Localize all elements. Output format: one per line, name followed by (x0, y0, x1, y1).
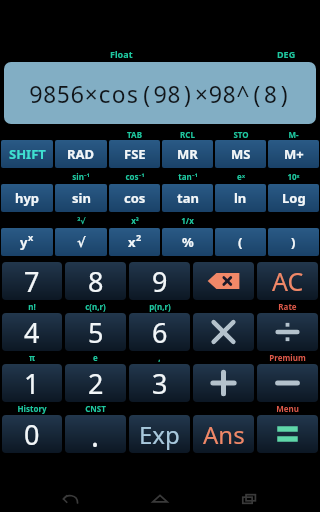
staticText: cos⁻¹ (125, 171, 145, 182)
staticText: MR (177, 145, 198, 163)
staticText: 9 (152, 263, 168, 300)
staticText: 1/x (181, 215, 194, 226)
staticText: 9856×cos(98)×98^(8) (29, 78, 292, 109)
staticText: RCL (180, 129, 195, 140)
staticText: 0 (24, 416, 40, 453)
staticText: 4 (24, 314, 40, 351)
staticText: ³√ (77, 215, 86, 226)
staticText: sin (72, 189, 91, 207)
staticText: 2 (88, 365, 104, 402)
staticText: c(n,r) (85, 301, 106, 312)
button[interactable]: cos (109, 184, 160, 212)
button[interactable]: hyp (1, 184, 53, 212)
button[interactable]: 1 (2, 364, 62, 402)
button[interactable]: ln (215, 184, 266, 212)
staticText: M- (288, 129, 299, 140)
button[interactable]: 6 (129, 313, 190, 351)
staticText: n! (28, 301, 36, 312)
button[interactable]: Multiply (193, 313, 254, 351)
button[interactable]: 0 (2, 415, 62, 453)
button[interactable]: Divide (257, 313, 318, 351)
staticText: e (93, 352, 98, 363)
staticText: tan⁻¹ (178, 171, 198, 182)
button[interactable]: Ans (193, 415, 254, 453)
button[interactable]: 2 (65, 364, 126, 402)
staticText: 6 (152, 314, 168, 351)
button[interactable]: 3 (129, 364, 190, 402)
button[interactable]: Log (268, 184, 319, 212)
staticText: x (128, 233, 136, 251)
button[interactable]: ( (215, 228, 266, 256)
button[interactable]: y (1, 228, 53, 256)
button[interactable]: Equals (257, 415, 318, 453)
button[interactable]: Back (50, 486, 90, 512)
staticText: 10ˣ (287, 171, 300, 182)
button[interactable]: FSE (109, 140, 160, 168)
staticText: SHIFT (9, 145, 46, 163)
staticText: AC (272, 264, 304, 298)
staticText: History (17, 403, 47, 414)
staticText: % (182, 233, 194, 251)
staticText: π (29, 352, 35, 363)
staticText: Float (110, 48, 133, 60)
button[interactable]: √ (55, 228, 107, 256)
staticText: DEG (277, 48, 296, 60)
staticText: Premium (269, 352, 306, 363)
button[interactable]: Home (140, 486, 180, 512)
button[interactable]: x (109, 228, 160, 256)
staticText: ( (238, 233, 243, 251)
button[interactable]: % (162, 228, 213, 256)
button[interactable]: ) (268, 228, 319, 256)
staticText: x³ (131, 215, 139, 226)
button[interactable]: M+ (268, 140, 319, 168)
button[interactable]: RAD (55, 140, 107, 168)
staticText: √ (77, 235, 86, 250)
staticText: , (158, 352, 161, 363)
staticText: RAD (67, 145, 95, 163)
staticText: eˣ (237, 171, 245, 182)
staticText: CNST (85, 403, 106, 414)
staticText: . (91, 415, 100, 453)
staticText: x (28, 231, 34, 243)
staticText: 1 (24, 365, 40, 402)
staticText: 5 (88, 314, 104, 351)
button[interactable]: 7 (2, 262, 62, 300)
button[interactable]: 5 (65, 313, 126, 351)
button[interactable]: sin (55, 184, 107, 212)
staticText: STO (233, 129, 249, 140)
staticText: cos (124, 189, 146, 207)
button[interactable]: MS (215, 140, 266, 168)
staticText: 8 (88, 263, 104, 300)
staticText: Ans (203, 418, 245, 451)
button[interactable]: Exp (129, 415, 190, 453)
staticText: 2 (136, 231, 142, 243)
button[interactable]: SHIFT (1, 140, 53, 168)
staticText: FSE (124, 145, 146, 163)
button[interactable]: tan (162, 184, 213, 212)
staticText: 7 (24, 263, 40, 300)
button[interactable]: 8 (65, 262, 126, 300)
button[interactable]: AC (257, 262, 318, 300)
staticText: M+ (284, 145, 304, 163)
staticText: ) (291, 233, 296, 251)
staticText: Menu (276, 403, 299, 414)
staticText: 3 (152, 365, 168, 402)
staticText: TAB (127, 129, 142, 140)
button[interactable]: 9 (129, 262, 190, 300)
staticText: tan (177, 189, 199, 207)
staticText: Log (282, 189, 306, 207)
button[interactable]: MR (162, 140, 213, 168)
button[interactable]: Plus (193, 364, 254, 402)
staticText: Rate (278, 301, 297, 312)
button[interactable]: . (65, 415, 126, 453)
button[interactable]: Minus (257, 364, 318, 402)
staticText: sin⁻¹ (72, 171, 90, 182)
staticText: ln (234, 189, 247, 207)
staticText: p(n,r) (149, 301, 171, 312)
button[interactable]: 4 (2, 313, 62, 351)
staticText: y (20, 233, 28, 251)
staticText: hyp (15, 189, 40, 207)
staticText: Exp (139, 418, 180, 451)
button[interactable]: Recents (230, 486, 270, 512)
button[interactable]: Delete (193, 262, 254, 300)
